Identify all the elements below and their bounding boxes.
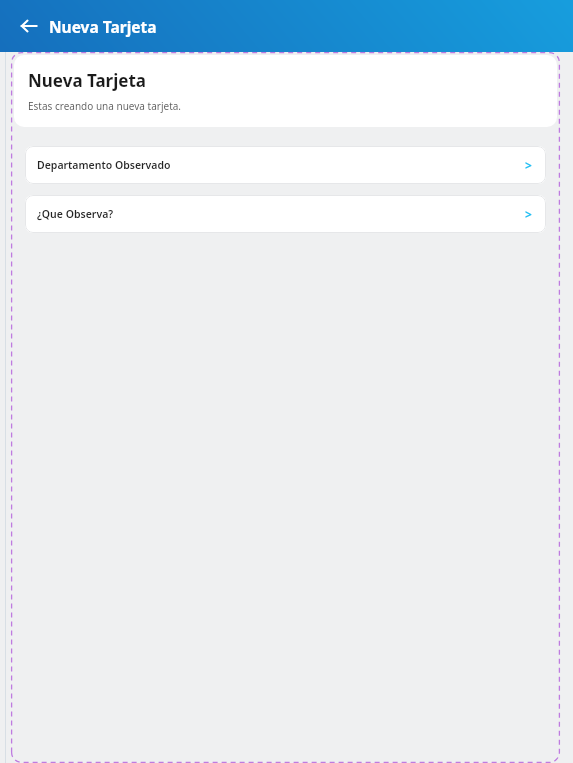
button[interactable]: Back: [16, 13, 42, 39]
staticText: Estas creando una nueva tarjeta.: [28, 99, 182, 113]
staticText: Nueva Tarjeta: [28, 69, 146, 92]
staticText: ¿Que Observa?: [37, 207, 114, 221]
staticText: >: [525, 157, 532, 173]
button[interactable]: Departamento Observado: [25, 146, 546, 184]
staticText: Departamento Observado: [37, 158, 171, 172]
staticText: Nueva Tarjeta: [49, 16, 157, 37]
button[interactable]: ¿Que Observa?: [25, 195, 546, 233]
staticText: >: [525, 206, 532, 222]
